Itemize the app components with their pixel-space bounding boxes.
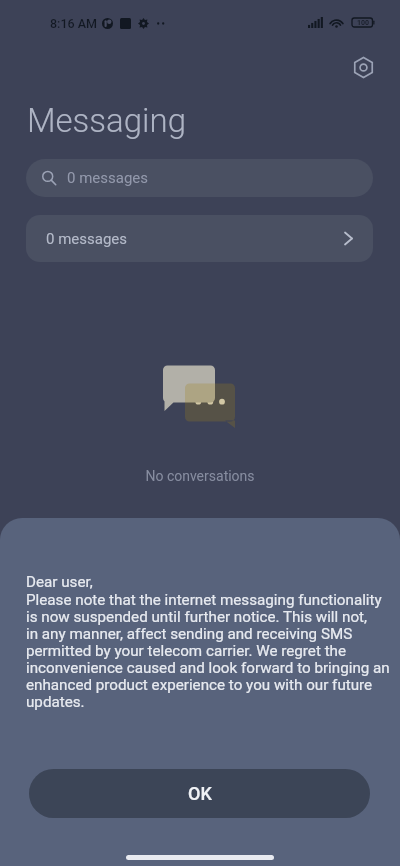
staticText: No conversations: [0, 468, 400, 484]
staticText: 100: [357, 19, 370, 27]
staticText: 8:16 AM: [50, 16, 98, 31]
button[interactable]: 0 messages: [26, 159, 373, 197]
button[interactable]: OK: [29, 769, 370, 818]
button[interactable]: Settings: [349, 53, 377, 81]
button[interactable]: 0 messages: [26, 215, 373, 262]
staticText: Dear user, Please note that the internet…: [26, 573, 398, 710]
staticText: OK: [188, 783, 212, 804]
staticText: Messaging: [27, 101, 186, 140]
staticText: 0 messages: [46, 230, 128, 248]
staticText: 0 messages: [67, 169, 149, 187]
